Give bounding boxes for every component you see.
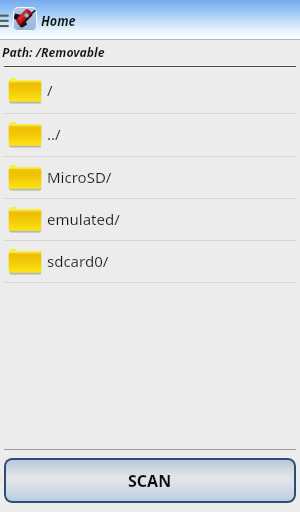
staticText: SCAN [128,470,172,492]
staticText: / [47,80,53,100]
button[interactable]: SCAN [4,458,296,503]
button[interactable]: Menu [0,10,11,30]
staticText: sdcard0/ [47,251,109,271]
button[interactable]: MicroSD/ [0,157,300,198]
staticText: emulated/ [47,209,120,229]
staticText: Home [41,11,76,30]
staticText: MicroSD/ [47,167,112,187]
button[interactable]: Rocket app icon [13,7,37,31]
staticText: ../ [47,124,61,144]
button[interactable]: ../ [0,114,300,156]
button[interactable]: emulated/ [0,199,300,240]
staticText: Path: /Removable [2,43,105,61]
button[interactable]: sdcard0/ [0,241,300,282]
button[interactable]: / [0,68,300,113]
